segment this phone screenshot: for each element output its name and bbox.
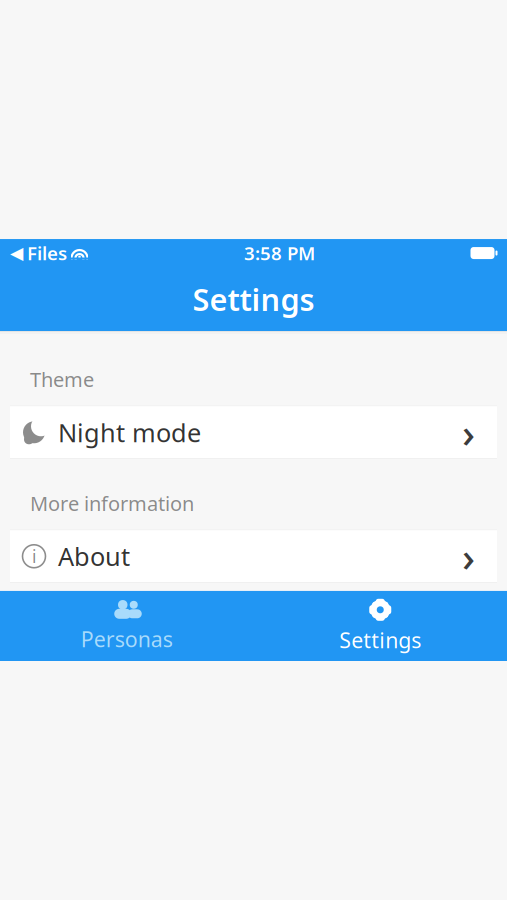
button[interactable]: Settings xyxy=(253,591,507,661)
button[interactable]: i xyxy=(10,530,497,582)
staticText: ◀ xyxy=(10,243,23,263)
staticText: › xyxy=(462,406,475,459)
staticText: i xyxy=(32,545,36,568)
staticText: Settings xyxy=(339,626,421,654)
button[interactable]: Personas xyxy=(0,591,253,661)
staticText: About xyxy=(58,539,130,573)
staticText: Settings xyxy=(192,279,314,319)
staticText: Theme xyxy=(30,366,94,393)
staticText: Files xyxy=(27,241,67,265)
staticText: More information xyxy=(30,490,194,517)
staticText: Personas xyxy=(81,625,173,653)
staticText: › xyxy=(462,530,475,583)
staticText: Night mode xyxy=(58,415,201,449)
staticText: 3:58 PM xyxy=(244,241,315,265)
button[interactable]: Night mode xyxy=(10,406,497,458)
